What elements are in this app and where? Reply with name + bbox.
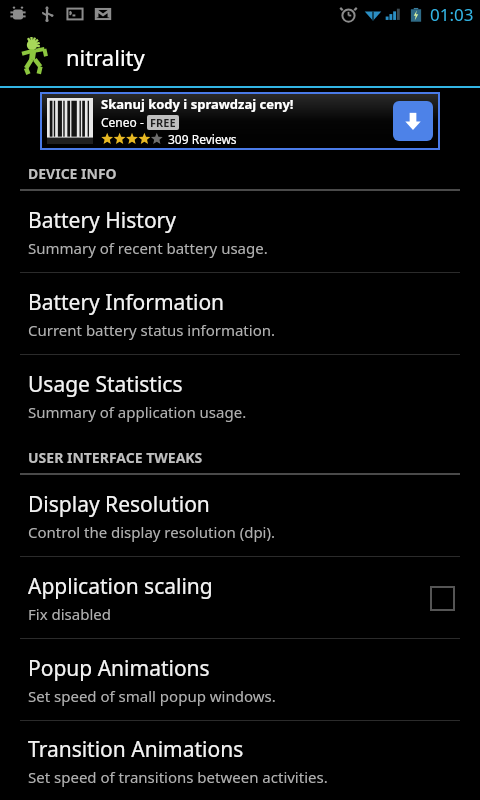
staticText: Display Resolution [28, 490, 210, 519]
button[interactable]: Application scaling toggle [424, 580, 460, 616]
staticText: USER INTERFACE TWEAKS [28, 448, 203, 467]
button[interactable]: Battery Information [0, 273, 480, 354]
button[interactable]: Skanuj kody i sprawdzaj ceny! [42, 94, 438, 148]
staticText: 309 Reviews [168, 131, 237, 147]
staticText: Set speed of small popup windows. [28, 686, 276, 706]
staticText: Battery History [28, 206, 176, 235]
button[interactable]: nitrality [0, 28, 480, 86]
staticText: Summary of recent battery usage. [28, 238, 268, 258]
staticText: Ceneo - [101, 114, 147, 130]
button[interactable]: Transition Animations [0, 721, 480, 800]
staticText: Fix disabled [28, 604, 111, 624]
staticText: FREE [150, 115, 176, 130]
button[interactable]: Battery History [0, 191, 480, 272]
button[interactable]: Application scaling [0, 557, 480, 638]
staticText: Transition Animations [28, 735, 244, 764]
staticText: Application scaling [28, 572, 213, 601]
staticText: DEVICE INFO [28, 164, 117, 183]
button[interactable]: Popup Animations [0, 639, 480, 720]
staticText: Usage Statistics [28, 370, 183, 399]
staticText: Control the display resolution (dpi). [28, 522, 275, 542]
button[interactable]: Usage Statistics [0, 355, 480, 436]
staticText: Set speed of transitions between activit… [28, 767, 328, 787]
staticText: Summary of application usage. [28, 402, 247, 422]
staticText: Skanuj kody i sprawdzaj ceny! [101, 95, 294, 113]
staticText: Popup Animations [28, 654, 210, 683]
button[interactable]: Download [393, 101, 433, 141]
staticText: Current battery status information. [28, 320, 276, 340]
staticText: 01:03 [430, 3, 474, 26]
staticText: nitrality [66, 42, 145, 72]
staticText: Battery Information [28, 288, 225, 317]
button[interactable]: Display Resolution [0, 475, 480, 556]
